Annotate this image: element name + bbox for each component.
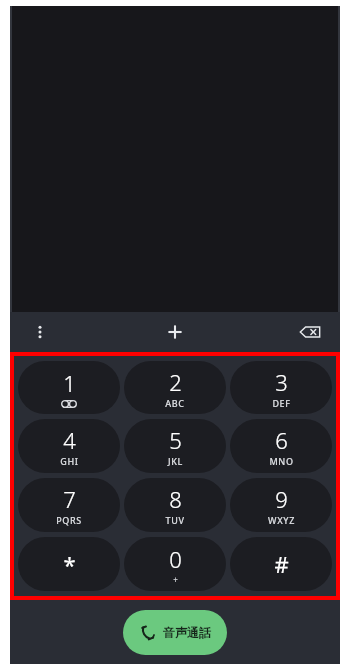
staticText: 8 <box>169 484 182 514</box>
button[interactable]: Backspace <box>280 312 340 352</box>
staticText: WXYZ <box>268 514 295 526</box>
staticText: 9 <box>275 484 288 514</box>
staticText: GHI <box>60 455 79 467</box>
staticText: MNO <box>269 455 294 467</box>
button[interactable]: 1 <box>18 361 120 414</box>
staticText: PQRS <box>56 514 82 526</box>
staticText: ABC <box>165 397 185 409</box>
staticText: TUV <box>165 514 185 526</box>
staticText: + <box>173 574 178 585</box>
staticText: 1 <box>63 368 76 398</box>
button[interactable]: 9 <box>230 478 332 532</box>
staticText: 4 <box>63 425 76 455</box>
button[interactable]: 6 <box>230 419 332 473</box>
staticText: 2 <box>169 367 182 397</box>
button[interactable]: 8 <box>124 478 226 532</box>
button[interactable]: 5 <box>124 419 226 473</box>
button[interactable]: 音声通話 <box>123 610 227 655</box>
button[interactable]: 3 <box>230 361 332 414</box>
staticText: 6 <box>275 425 288 455</box>
button[interactable]: 2 <box>124 361 226 414</box>
staticText: 音声通話 <box>163 625 211 640</box>
staticText: 7 <box>63 484 76 514</box>
button[interactable]: Add <box>70 312 280 352</box>
staticText: * <box>63 549 76 579</box>
button[interactable]: 4 <box>18 419 120 473</box>
button[interactable]: # <box>230 537 332 591</box>
staticText: 3 <box>275 367 288 397</box>
button[interactable]: * <box>18 537 120 591</box>
button[interactable]: 7 <box>18 478 120 532</box>
staticText: DEF <box>272 397 291 409</box>
staticText: 0 <box>169 544 182 574</box>
staticText: 5 <box>169 425 182 455</box>
button[interactable]: More options <box>10 312 70 352</box>
staticText: JKL <box>168 455 183 467</box>
button[interactable]: 0 <box>124 537 226 591</box>
staticText: # <box>274 549 289 579</box>
